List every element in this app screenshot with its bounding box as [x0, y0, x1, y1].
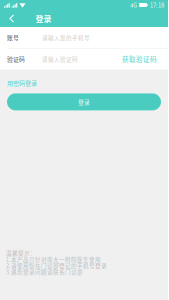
- staticText: 3.遇到登录问题请联系门诊部: [6, 269, 83, 275]
- staticText: 请输入验证码: [42, 55, 78, 63]
- button[interactable]: 用密码登录: [0, 76, 37, 89]
- staticText: 账号: [7, 33, 19, 42]
- staticText: 17:18: [150, 1, 164, 9]
- staticText: 4G: [130, 1, 137, 9]
- button[interactable]: 登录: [7, 93, 161, 110]
- staticText: 登录: [35, 13, 51, 24]
- button[interactable]: 获取验证码: [116, 49, 157, 69]
- staticText: 验证码: [7, 55, 25, 63]
- button[interactable]: Back: [0, 12, 23, 25]
- staticText: 温馨提示：: [6, 250, 36, 256]
- staticText: 用密码登录: [7, 78, 37, 87]
- staticText: 获取验证码: [122, 54, 157, 64]
- staticText: 请输入您的手机号: [42, 33, 90, 41]
- staticText: 1.本产品只针对南大一附院医生使用: [6, 256, 101, 262]
- staticText: 登录: [78, 98, 90, 106]
- staticText: 2.请使用您在门诊部登记的手机号登录: [6, 262, 107, 269]
